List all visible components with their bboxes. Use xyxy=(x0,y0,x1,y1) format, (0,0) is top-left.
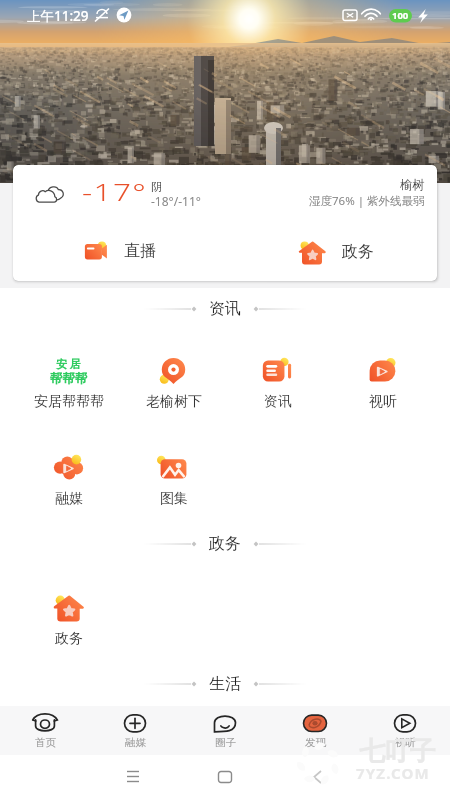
staticText: 政务 xyxy=(55,630,83,648)
staticText: -17° xyxy=(82,176,148,207)
button[interactable]: 融媒 xyxy=(90,706,180,755)
button[interactable]: Back xyxy=(294,755,339,800)
staticText: 发现 xyxy=(305,736,326,749)
staticText: 榆树 xyxy=(400,177,425,193)
staticText: 100 xyxy=(392,9,409,22)
button[interactable]: 圈子 xyxy=(180,706,270,755)
button[interactable]: 图集 xyxy=(121,444,226,510)
button[interactable]: 直播 xyxy=(80,236,190,266)
button[interactable]: 政务 xyxy=(297,237,407,267)
button[interactable]: 融媒 xyxy=(16,444,121,510)
button[interactable]: Home xyxy=(202,755,247,800)
staticText: 视听 xyxy=(395,736,416,749)
staticText: 阴 xyxy=(151,180,162,194)
button[interactable]: 政务 xyxy=(16,584,121,650)
staticText: 视听 xyxy=(369,393,397,411)
button[interactable]: 发现 xyxy=(270,706,360,755)
staticText: 生活 xyxy=(209,674,241,694)
staticText: 政务 xyxy=(209,534,241,554)
button[interactable]: Menu xyxy=(113,755,158,800)
staticText: 老榆树下 xyxy=(146,393,202,411)
staticText: 资讯 xyxy=(264,393,292,411)
button[interactable]: -17° xyxy=(13,165,437,281)
staticText: 7YZ.COM xyxy=(356,763,430,783)
staticText: 资讯 xyxy=(209,299,241,319)
staticText: -18°/-11° xyxy=(151,193,201,209)
staticText: 直播 xyxy=(124,241,156,261)
staticText: 融媒 xyxy=(55,490,83,508)
staticText: 七叮子 xyxy=(360,735,435,768)
staticText: 融媒 xyxy=(125,736,146,749)
staticText: 图集 xyxy=(160,490,188,508)
button[interactable]: 首页 xyxy=(0,706,90,755)
staticText: 上午11:29 xyxy=(27,7,89,25)
staticText: 政务 xyxy=(342,242,374,262)
button[interactable]: 资讯 xyxy=(225,347,330,413)
staticText: 首页 xyxy=(35,736,56,749)
staticText: 帮帮帮 xyxy=(50,371,88,387)
button[interactable]: 视听 xyxy=(330,347,435,413)
staticText: 安居帮帮帮 xyxy=(34,393,104,411)
staticText: 安 居 xyxy=(56,356,81,371)
button[interactable]: 安居帮帮帮 xyxy=(16,347,121,413)
staticText: 湿度76% | 紫外线最弱 xyxy=(309,193,425,209)
staticText: 圈子 xyxy=(215,736,236,749)
button[interactable]: 老榆树下 xyxy=(121,347,226,413)
button[interactable]: 视听 xyxy=(360,706,450,755)
